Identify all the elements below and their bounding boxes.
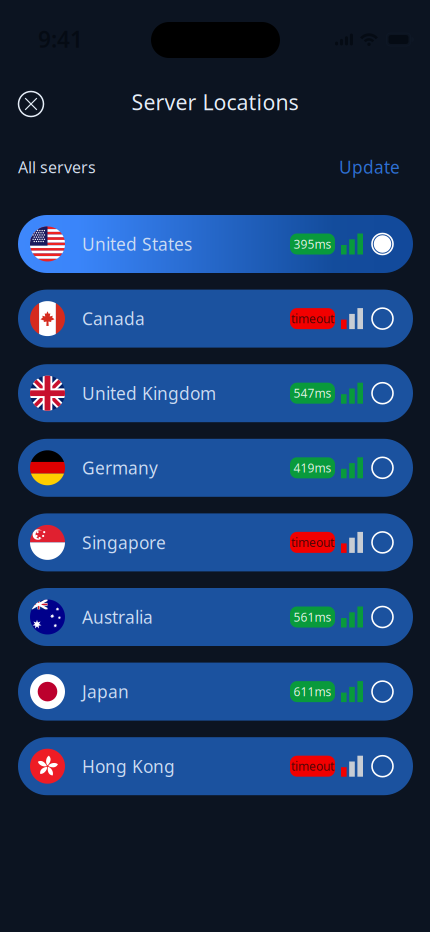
staticText: 547ms — [293, 385, 331, 401]
staticText: Canada — [82, 307, 145, 330]
staticText: timeout — [291, 758, 334, 774]
button[interactable]: Australia — [18, 588, 413, 646]
staticText: Germany — [82, 456, 158, 479]
staticText: Singapore — [82, 531, 166, 554]
staticText: timeout — [291, 534, 334, 550]
staticText: United States — [82, 232, 192, 255]
button[interactable]: United States — [18, 215, 413, 273]
staticText: Japan — [82, 680, 129, 703]
staticText: Server Locations — [131, 88, 298, 116]
button[interactable]: Update — [310, 150, 400, 184]
button[interactable]: Hong Kong — [18, 737, 413, 795]
button[interactable]: Singapore — [18, 513, 413, 571]
button[interactable]: Close — [9, 82, 53, 126]
button[interactable]: United Kingdom — [18, 364, 413, 422]
staticText: 419ms — [293, 460, 331, 476]
button[interactable]: Germany — [18, 439, 413, 497]
staticText: 561ms — [293, 609, 331, 625]
button[interactable]: Canada — [18, 290, 413, 348]
staticText: Hong Kong — [82, 755, 175, 778]
staticText: Australia — [82, 605, 153, 628]
staticText: All servers — [18, 156, 96, 178]
staticText: timeout — [291, 311, 334, 326]
staticText: 611ms — [293, 684, 331, 699]
staticText: Update — [339, 155, 400, 178]
staticText: 395ms — [293, 236, 331, 252]
staticText: United Kingdom — [82, 382, 216, 405]
button[interactable]: Japan — [18, 663, 413, 721]
staticText: 9:41 — [38, 24, 83, 54]
